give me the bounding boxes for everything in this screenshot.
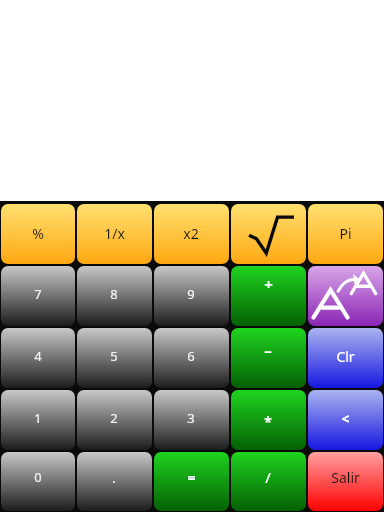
button[interactable]: % [1,204,75,264]
button[interactable]: 8 [77,266,152,326]
button[interactable]: Clr [308,328,383,388]
button[interactable]: x2 [154,204,229,264]
button[interactable]: * [231,390,306,450]
staticText: 0 [34,468,42,486]
staticText: Salir [331,468,360,487]
staticText: 7 [34,285,42,303]
staticText: . [112,468,116,487]
button[interactable]: Salir [308,452,383,511]
button[interactable]: 3 [154,390,229,450]
staticText: = [187,468,196,487]
staticText: 1/x [104,224,125,243]
staticText: 8 [110,285,118,303]
button[interactable]: + [231,266,306,326]
staticText: Clr [336,347,355,366]
button[interactable]: . [77,452,152,511]
button[interactable]: 0 [1,452,75,511]
button[interactable]: 1 [1,390,75,450]
staticText: * [264,412,272,431]
staticText: 2 [110,409,118,427]
button[interactable]: 5 [77,328,152,388]
button[interactable]: 1/x [77,204,152,264]
button[interactable]: = [154,452,229,511]
button[interactable]: / [231,452,306,511]
staticText: 9 [187,285,195,303]
staticText: 4 [34,347,42,365]
staticText: / [265,467,271,487]
button[interactable]: Pi [308,204,383,264]
staticText: 5 [110,347,118,365]
staticText: x2 [183,224,199,243]
button[interactable]: 2 [77,390,152,450]
staticText: Pi [339,224,352,243]
button[interactable]: – [231,328,306,388]
button[interactable]: Change font size [308,266,383,326]
button[interactable]: Square root [231,204,306,264]
staticText: % [32,224,44,243]
button[interactable]: 4 [1,328,75,388]
staticText: – [264,340,272,360]
staticText: + [264,274,273,294]
button[interactable]: 9 [154,266,229,326]
staticText: 3 [187,409,195,427]
button[interactable]: 6 [154,328,229,388]
staticText: 6 [187,347,195,365]
staticText: < [341,409,350,428]
button[interactable]: < [308,390,383,450]
button[interactable]: 7 [1,266,75,326]
staticText: 1 [34,409,42,427]
